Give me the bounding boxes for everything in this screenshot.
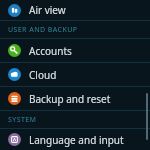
staticText: Cloud [29, 68, 57, 82]
staticText: USER AND BACKUP [8, 25, 78, 35]
staticText: Accounts [29, 44, 72, 58]
button[interactable]: Backup and reset [0, 87, 150, 110]
button[interactable]: Language and input [0, 129, 150, 150]
other: Cloud [8, 68, 21, 81]
other: Language and input [8, 133, 21, 146]
other: Backup and reset [8, 92, 21, 105]
other: Air view [8, 4, 21, 17]
staticText: Language and input [29, 133, 124, 147]
button[interactable]: Air view [0, 0, 150, 20]
staticText: Backup and reset [29, 92, 111, 106]
button[interactable]: Cloud [0, 63, 150, 86]
button[interactable]: Accounts [0, 39, 150, 62]
staticText: Air view [29, 3, 66, 17]
staticText: SYSTEM [8, 115, 37, 125]
other: Accounts [8, 44, 21, 57]
